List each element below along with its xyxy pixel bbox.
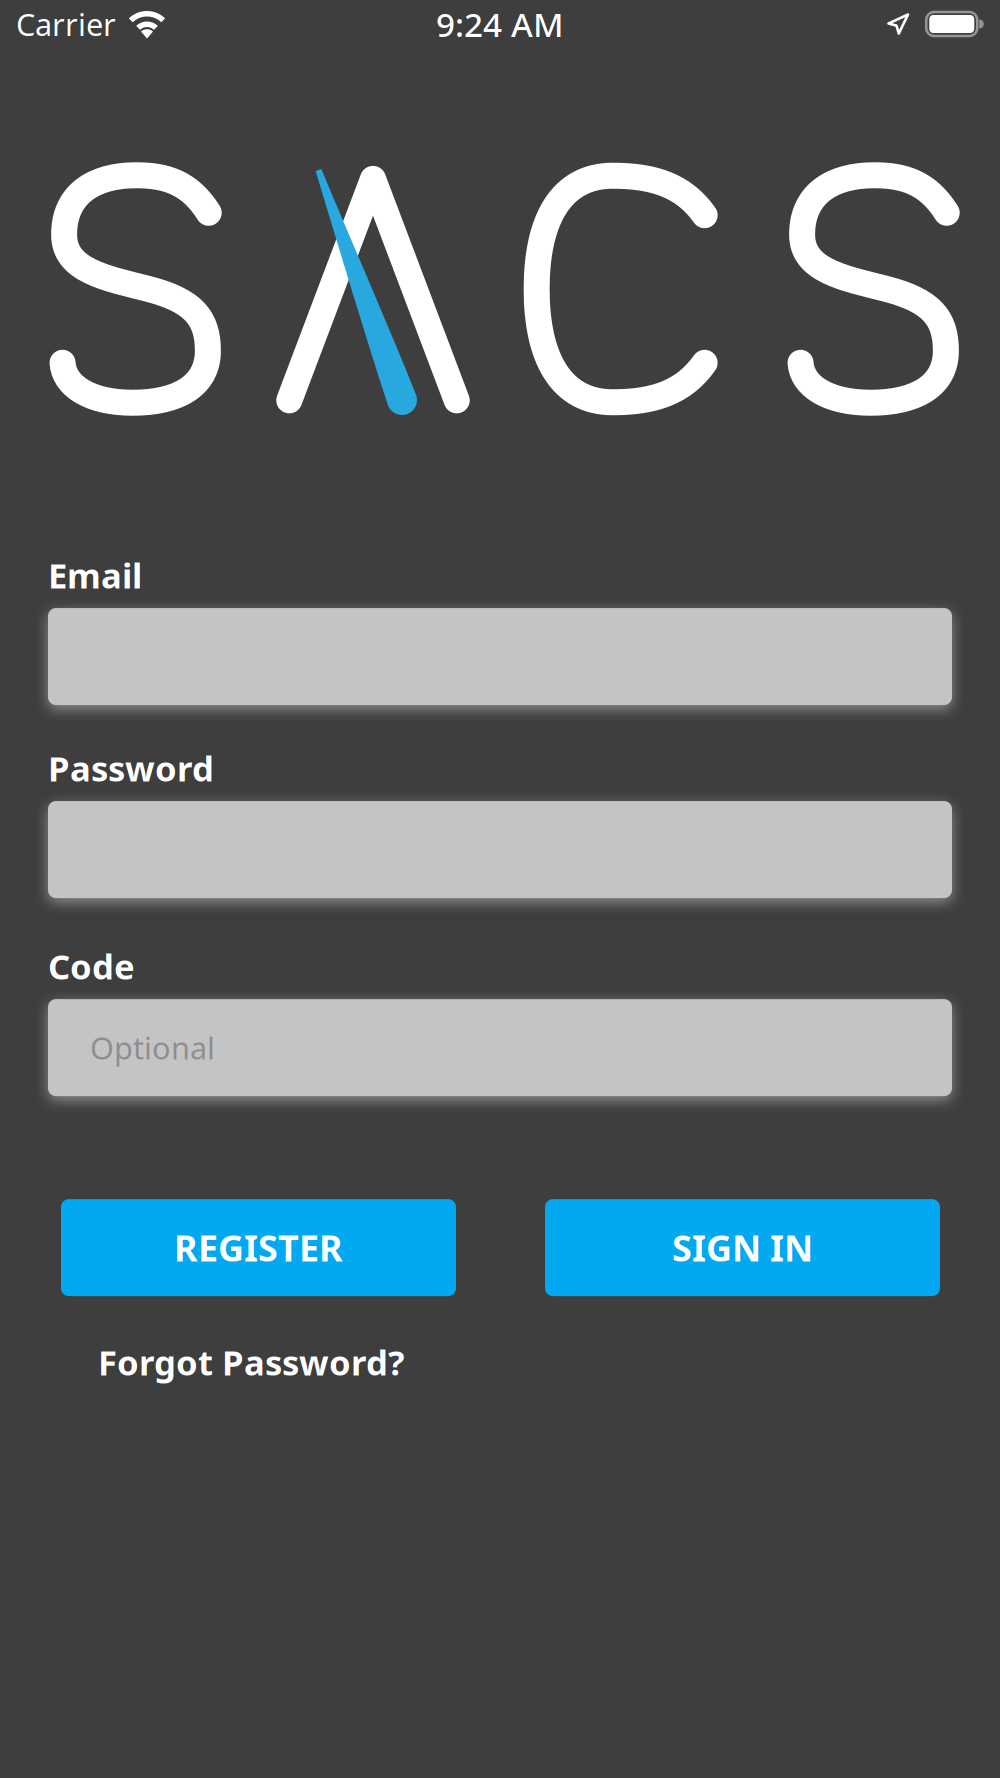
staticText: SIGN IN xyxy=(672,1224,813,1271)
button[interactable]: REGISTER xyxy=(61,1199,456,1296)
staticText: 9:24 AM xyxy=(436,2,564,46)
staticText: Optional xyxy=(90,1027,215,1068)
staticText: Carrier xyxy=(16,4,116,44)
staticText: Email xyxy=(48,552,142,598)
button[interactable]: Forgot Password? xyxy=(48,1327,455,1397)
staticText: Code xyxy=(48,943,135,989)
button[interactable]: Optional xyxy=(48,999,952,1096)
staticText: Password xyxy=(48,745,214,791)
staticText: REGISTER xyxy=(174,1224,343,1271)
staticText: Forgot Password? xyxy=(98,1339,405,1385)
button[interactable]: SIGN IN xyxy=(545,1199,940,1296)
